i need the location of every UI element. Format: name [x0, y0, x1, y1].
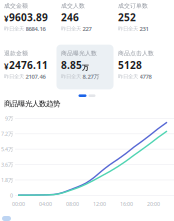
staticText: 商品曝光人数趋势: [4, 99, 60, 108]
staticText: ¥: [4, 13, 9, 24]
staticText: 昨日全天: [4, 73, 24, 80]
staticText: 8.27万: [82, 72, 99, 80]
staticText: 7.2万: [1, 130, 13, 137]
button[interactable]: 商品点击人数: [113, 45, 170, 89]
staticText: 成交人数: [61, 2, 85, 9]
staticText: 8684.16: [25, 25, 45, 33]
staticText: 2107.46: [25, 72, 45, 80]
staticText: 商品点击人数: [118, 50, 154, 57]
staticText: 00:00: [12, 200, 25, 208]
staticText: 04:00: [39, 200, 52, 208]
staticText: 昨日全天: [4, 25, 24, 32]
staticText: 4778: [139, 72, 151, 80]
staticText: 成交订单数: [118, 2, 148, 9]
staticText: 商品曝光人数: [61, 50, 97, 57]
staticText: ¥: [4, 61, 9, 72]
staticText: 5.4万: [1, 145, 13, 153]
staticText: 退款金额: [4, 50, 28, 57]
staticText: 3.6万: [1, 161, 13, 168]
staticText: 0: [10, 192, 13, 199]
staticText: 227: [82, 25, 91, 33]
staticText: 16:00: [120, 200, 133, 208]
staticText: 1.8万: [1, 176, 13, 184]
button[interactable]: 成交人数: [56, 0, 113, 42]
button[interactable]: 成交金额: [0, 0, 56, 42]
staticText: 昨日全天: [118, 25, 138, 32]
staticText: 231: [139, 25, 148, 33]
button[interactable]: 成交订单数: [113, 0, 170, 42]
staticText: 2476.11: [9, 58, 48, 72]
staticText: 9603.89: [9, 10, 48, 24]
staticText: 成交金额: [4, 2, 28, 9]
button[interactable]: 商品曝光人数: [56, 45, 113, 89]
button[interactable]: 退款金额: [0, 45, 56, 89]
staticText: 5128: [118, 58, 142, 72]
staticText: 8.85: [61, 58, 82, 72]
staticText: 昨日全天: [118, 73, 138, 80]
staticText: 昨日全天: [61, 73, 81, 80]
staticText: 12:00: [93, 200, 106, 208]
staticText: 万: [82, 63, 89, 72]
staticText: 20:00: [147, 200, 160, 208]
staticText: 9万: [5, 115, 13, 122]
staticText: 08:00: [66, 200, 79, 208]
staticText: 昨日全天: [61, 25, 81, 32]
staticText: 246: [61, 10, 79, 24]
staticText: 252: [118, 10, 136, 24]
